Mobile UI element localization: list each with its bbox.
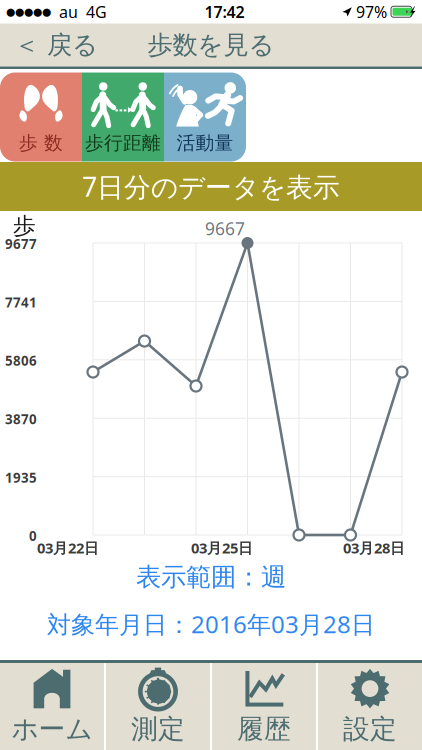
button[interactable]: ホーム <box>0 663 104 750</box>
staticText: au 4G <box>51 1 107 22</box>
staticText: ＜ 戻る <box>14 29 98 60</box>
staticText: 測定 <box>131 713 185 745</box>
staticText: 03月28日 <box>343 538 405 557</box>
button[interactable]: 測定 <box>106 663 210 750</box>
staticText: ●●●●● <box>6 6 51 18</box>
staticText: 7日分のデータを表示 <box>82 169 340 204</box>
staticText: 履歴 <box>237 713 291 745</box>
button[interactable]: 歩行距離 <box>82 72 164 161</box>
button[interactable]: 表示範囲：週 <box>0 562 422 592</box>
staticText: 活動量 <box>176 131 233 154</box>
staticText: 1935 <box>5 469 37 486</box>
staticText: 97% <box>352 1 391 22</box>
staticText: 5806 <box>5 352 37 369</box>
staticText: 17:42 <box>204 1 244 22</box>
staticText: 歩 数 <box>19 131 63 154</box>
staticText: 表示範囲：週 <box>136 561 286 592</box>
staticText: 9667 <box>205 217 245 240</box>
button[interactable]: ＜ 戻る <box>0 23 114 66</box>
staticText: ホーム <box>11 713 92 745</box>
button[interactable]: 履歴 <box>212 663 316 750</box>
staticText: 設定 <box>343 713 397 745</box>
button[interactable]: 活動量 <box>164 72 246 161</box>
staticText: 歩行距離 <box>85 131 161 154</box>
staticText: 03月22日 <box>37 538 99 557</box>
staticText: 03月25日 <box>191 538 253 557</box>
staticText: 対象年月日：2016年03月28日 <box>47 608 375 640</box>
button[interactable]: 設定 <box>318 663 422 750</box>
staticText: 7741 <box>5 293 37 311</box>
staticText: 9677 <box>5 235 37 253</box>
staticText: 歩数を見る <box>147 29 274 60</box>
staticText: 3870 <box>5 410 37 428</box>
button[interactable]: 対象年月日：2016年03月28日 <box>0 608 422 640</box>
button[interactable]: 歩 数 <box>0 72 82 161</box>
staticText: 0 <box>29 527 37 545</box>
staticText: 歩 <box>13 212 36 240</box>
